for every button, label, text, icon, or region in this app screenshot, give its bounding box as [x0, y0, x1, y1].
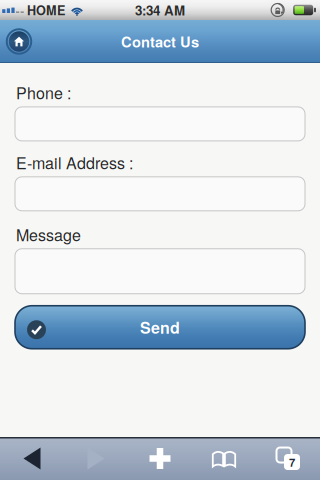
staticText: Message [16, 223, 81, 246]
button[interactable]: Pages [256, 437, 320, 480]
button[interactable]: Send [15, 306, 305, 349]
button[interactable]: Share [128, 437, 192, 480]
staticText: 7 [289, 454, 295, 470]
staticText: 3:34 AM [135, 0, 185, 20]
button[interactable]: Forward [64, 437, 128, 480]
button[interactable]: Back [0, 437, 64, 480]
staticText: HOME [27, 1, 65, 19]
button[interactable]: Home [3, 25, 35, 57]
staticText: Send [140, 316, 180, 339]
staticText: Contact Us [121, 31, 199, 52]
button[interactable]: Bookmarks [192, 437, 256, 480]
staticText: E-mail Address : [16, 151, 133, 174]
staticText: Phone : [16, 81, 71, 104]
